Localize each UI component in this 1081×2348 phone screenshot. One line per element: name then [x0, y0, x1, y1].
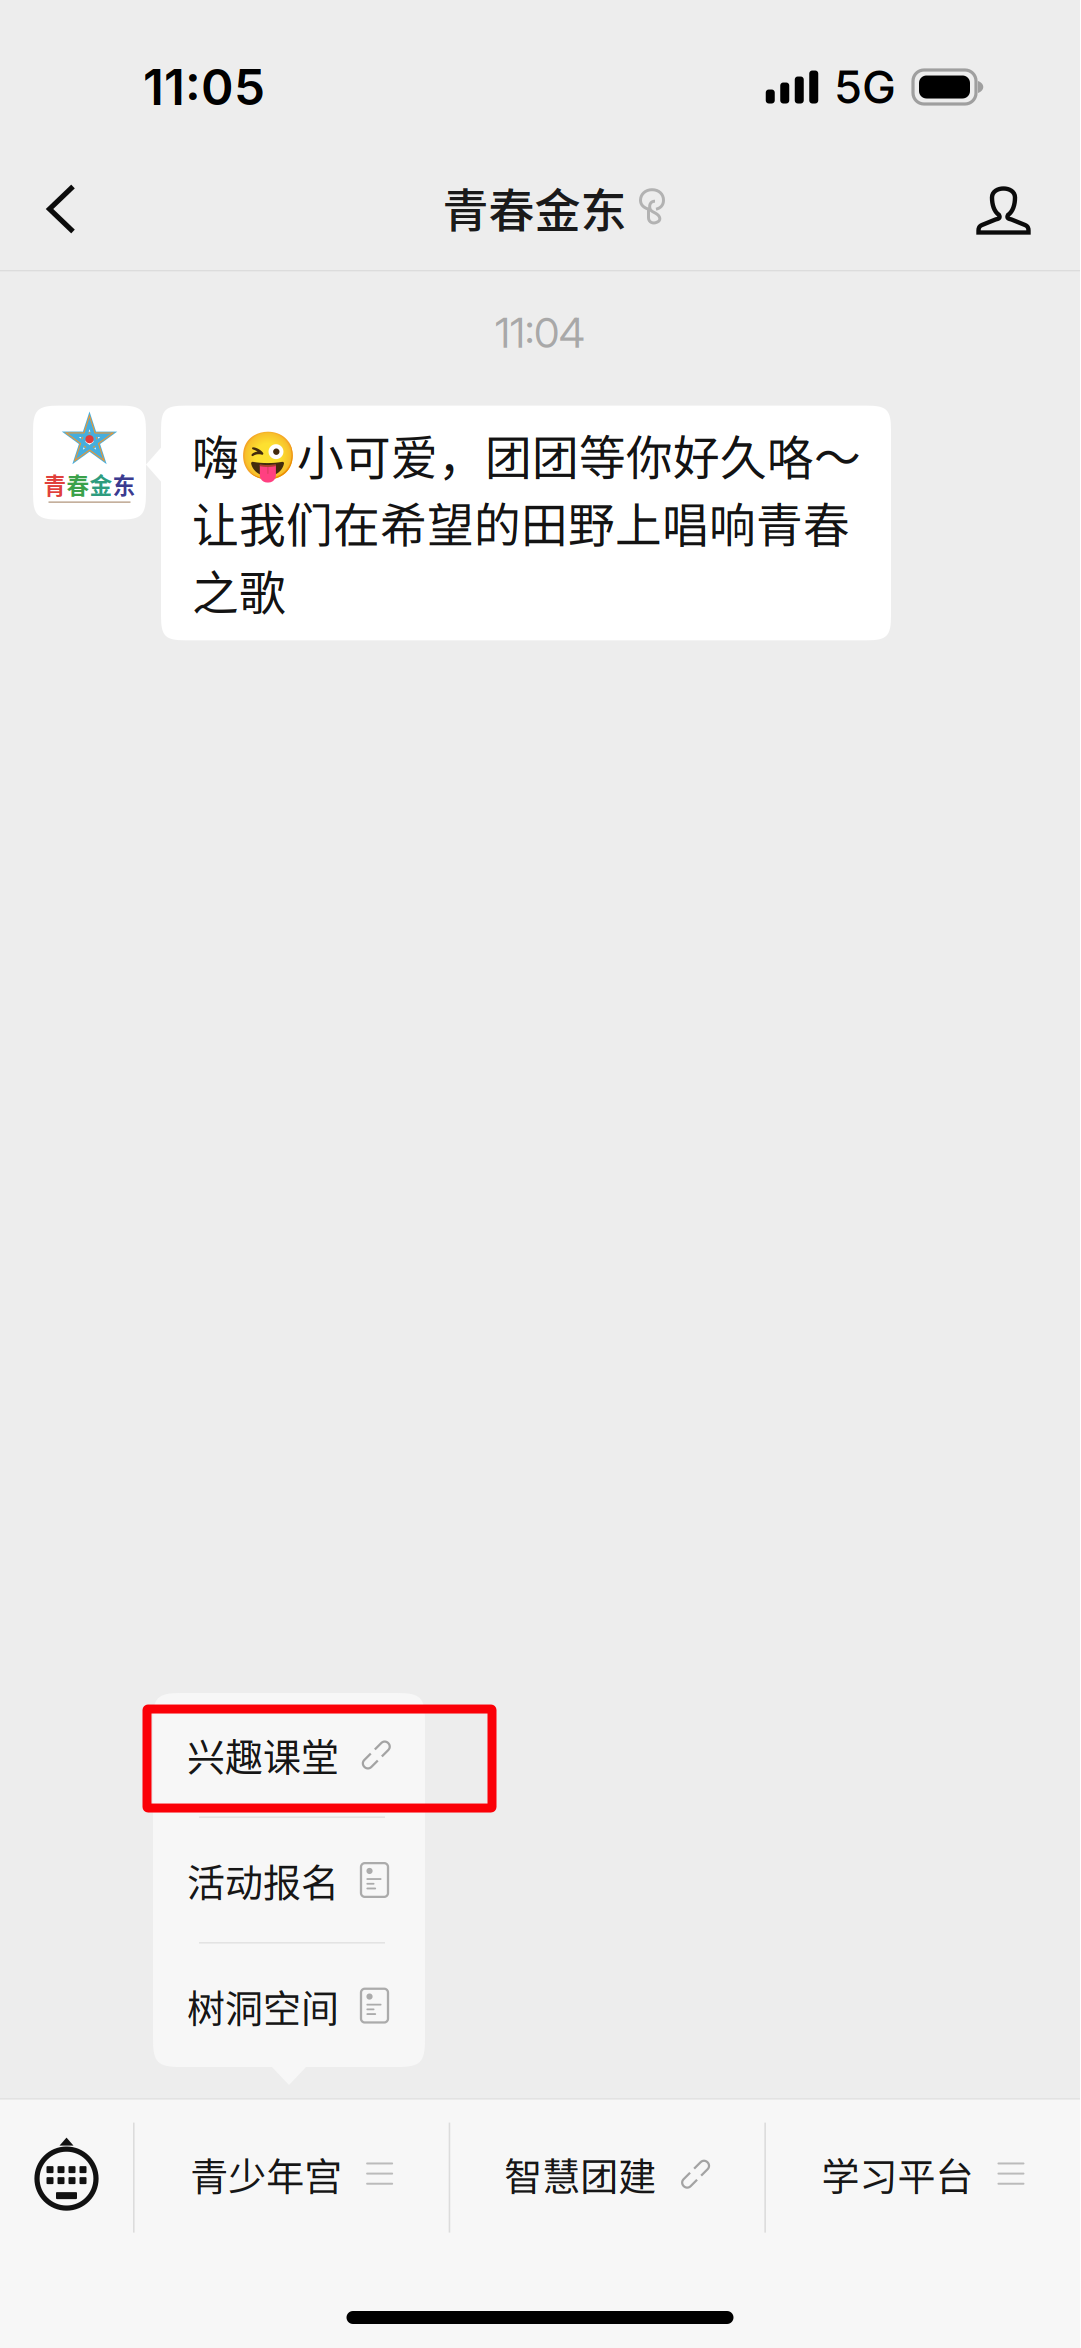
staticText: 学习平台 [821, 2146, 973, 2201]
staticText: 活动报名 [187, 1852, 339, 1907]
staticText: 青 [43, 468, 66, 500]
button[interactable]: 学习平台 [766, 2100, 1080, 2258]
staticText: 11:04 [495, 308, 585, 358]
button[interactable]: 青少年宫 [135, 2100, 449, 2258]
button[interactable]: Keyboard [0, 2100, 133, 2258]
staticText: 兴趣课堂 [187, 1727, 339, 1782]
button[interactable]: 活动报名 [153, 1818, 425, 1942]
staticText: 嗨😜小可爱，团团等你好久咯～让我们在希望的田野上唱响青春之歌 [192, 421, 861, 623]
button[interactable]: 智慧团建 [450, 2100, 764, 2258]
staticText: 11:05 [143, 57, 265, 117]
staticText: 5G [834, 60, 896, 114]
staticText: 春 [66, 468, 89, 500]
staticText: 智慧团建 [504, 2146, 656, 2201]
button[interactable]: Contact [925, 148, 1080, 270]
staticText: 青春金东 [442, 174, 626, 240]
staticText: 树洞空间 [187, 1978, 339, 2033]
staticText: 青少年宫 [190, 2146, 342, 2201]
button[interactable]: 树洞空间 [153, 1944, 425, 2068]
button[interactable]: Back [0, 148, 128, 270]
button[interactable]: 兴趣课堂 [153, 1692, 425, 1816]
staticText: 东 [112, 468, 135, 500]
staticText: 金 [89, 468, 112, 500]
